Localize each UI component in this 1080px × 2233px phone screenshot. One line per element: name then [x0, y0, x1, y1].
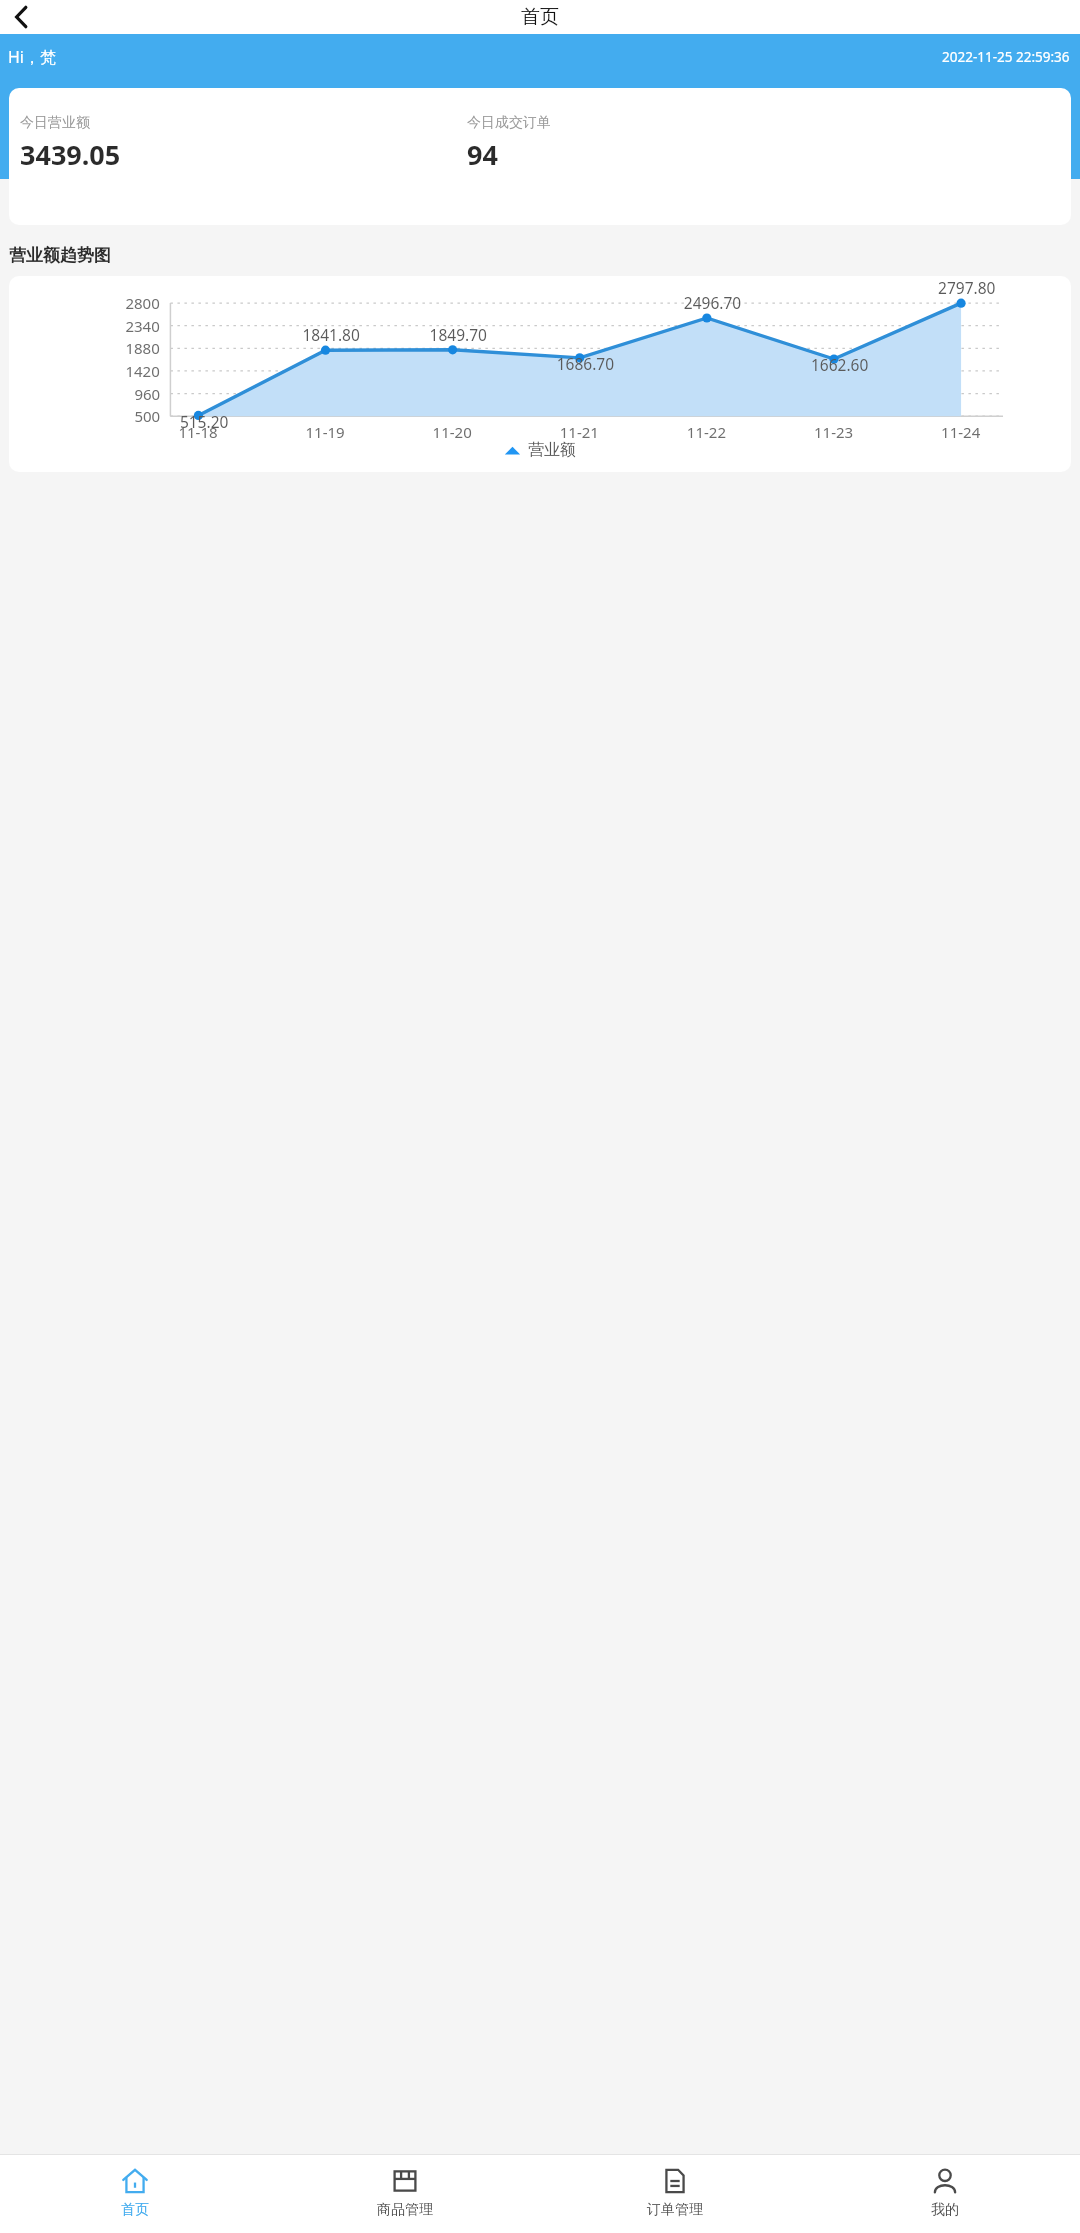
staticText: 营业额 — [528, 440, 576, 460]
button[interactable]: 订单管理 — [540, 2155, 810, 2233]
staticText: 商品管理 — [377, 2201, 433, 2219]
staticText: 今日成交订单 — [467, 114, 551, 132]
button[interactable]: Back — [3, 0, 39, 34]
staticText: 营业额趋势图 — [9, 245, 111, 266]
staticText: 3439.05 — [20, 136, 121, 173]
button[interactable]: 商品管理 — [270, 2155, 540, 2233]
staticText: 首页 — [521, 5, 559, 29]
staticText: 今日营业额 — [20, 114, 90, 132]
button[interactable]: 我的 — [810, 2155, 1080, 2233]
staticText: Hi，梵 — [8, 46, 56, 68]
staticText: 94 — [467, 136, 498, 173]
staticText: 2022-11-25 22:59:36 — [942, 48, 1070, 66]
staticText: 订单管理 — [647, 2201, 703, 2219]
staticText: 首页 — [121, 2201, 149, 2219]
staticText: 我的 — [931, 2201, 959, 2219]
button[interactable]: 今日营业额 — [9, 88, 1071, 225]
button[interactable]: 营业额 — [9, 276, 1071, 472]
button[interactable]: 首页 — [0, 2155, 270, 2233]
